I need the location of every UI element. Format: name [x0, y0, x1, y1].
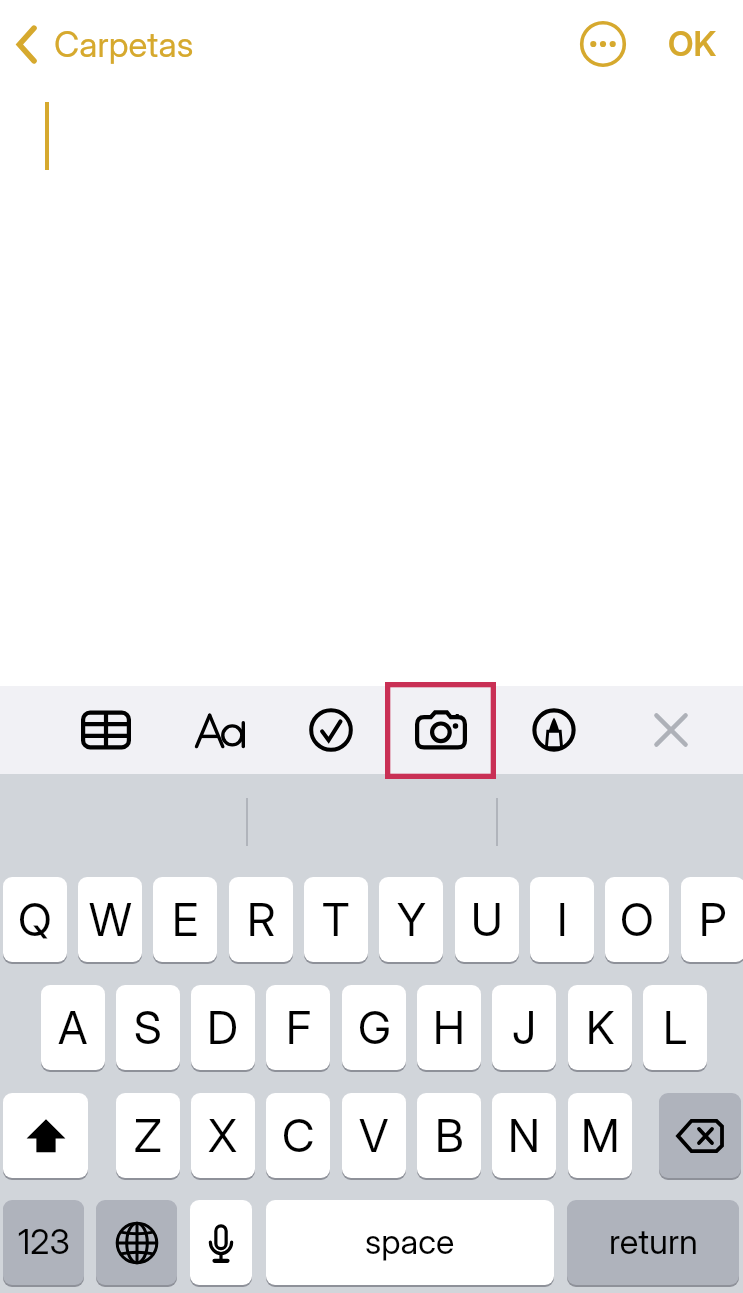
button[interactable]: D: [191, 985, 255, 1070]
staticText: Q: [18, 892, 52, 946]
staticText: K: [586, 1000, 615, 1054]
staticText: D: [207, 1000, 239, 1054]
button[interactable]: OK: [650, 0, 735, 88]
button[interactable]: Shift: [3, 1093, 88, 1178]
button[interactable]: H: [417, 985, 481, 1070]
button[interactable]: Z: [116, 1093, 180, 1178]
button[interactable]: F: [266, 985, 330, 1070]
staticText: W: [89, 892, 132, 946]
button[interactable]: R: [229, 877, 293, 962]
staticText: E: [172, 892, 199, 946]
button[interactable]: Markup: [525, 686, 583, 774]
button[interactable]: Q: [3, 877, 67, 962]
button[interactable]: Carpetas: [4, 0, 206, 88]
button[interactable]: I: [530, 877, 594, 962]
staticText: C: [282, 1108, 315, 1162]
button[interactable]: J: [492, 985, 556, 1070]
button[interactable]: Camera: [412, 686, 470, 774]
button[interactable]: L: [643, 985, 707, 1070]
staticText: J: [512, 1000, 537, 1054]
staticText: G: [358, 1000, 391, 1054]
staticText: U: [471, 892, 503, 946]
staticText: Y: [397, 892, 426, 946]
staticText: Carpetas: [54, 23, 194, 65]
button[interactable]: X: [191, 1093, 255, 1178]
button[interactable]: B: [417, 1093, 481, 1178]
button[interactable]: E: [153, 877, 217, 962]
button[interactable]: space: [266, 1200, 554, 1285]
button[interactable]: return: [567, 1200, 739, 1285]
staticText: M: [581, 1108, 620, 1162]
button[interactable]: Table: [77, 686, 135, 774]
button[interactable]: A: [41, 985, 105, 1070]
staticText: OK: [668, 23, 717, 64]
button[interactable]: N: [492, 1093, 556, 1178]
staticText: N: [508, 1108, 540, 1162]
staticText: I: [557, 892, 568, 946]
button[interactable]: K: [568, 985, 632, 1070]
button[interactable]: Checklist: [302, 686, 360, 774]
button[interactable]: More options: [575, 16, 631, 72]
staticText: L: [663, 1000, 688, 1054]
button[interactable]: Backspace: [659, 1093, 741, 1178]
button[interactable]: Hide keyboard: [642, 686, 700, 774]
staticText: O: [620, 892, 654, 946]
button[interactable]: Text format: [187, 686, 255, 774]
staticText: V: [359, 1108, 389, 1162]
button[interactable]: C: [266, 1093, 330, 1178]
staticText: S: [134, 1000, 162, 1054]
button[interactable]: Next keyboard: [96, 1200, 177, 1285]
staticText: X: [208, 1108, 238, 1162]
button[interactable]: M: [568, 1093, 632, 1178]
staticText: P: [699, 892, 727, 946]
staticText: B: [435, 1108, 464, 1162]
button[interactable]: P: [681, 877, 743, 962]
staticText: R: [247, 892, 276, 946]
button[interactable]: W: [78, 877, 142, 962]
button[interactable]: Dictation: [190, 1200, 252, 1285]
staticText: Z: [134, 1108, 162, 1162]
button[interactable]: 123: [3, 1200, 84, 1285]
button[interactable]: Y: [379, 877, 443, 962]
staticText: T: [322, 892, 350, 946]
button[interactable]: O: [605, 877, 669, 962]
staticText: space: [365, 1221, 455, 1262]
button[interactable]: S: [116, 985, 180, 1070]
button[interactable]: U: [455, 877, 519, 962]
staticText: A: [58, 1000, 88, 1054]
button[interactable]: V: [342, 1093, 406, 1178]
staticText: 123: [18, 1221, 70, 1262]
button[interactable]: G: [342, 985, 406, 1070]
staticText: H: [433, 1000, 465, 1054]
button[interactable]: T: [304, 877, 368, 962]
staticText: F: [286, 1000, 311, 1054]
staticText: return: [609, 1221, 698, 1263]
